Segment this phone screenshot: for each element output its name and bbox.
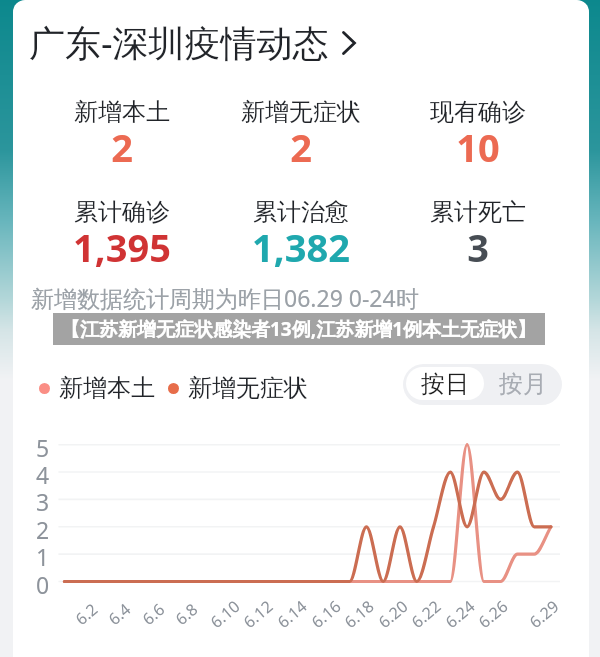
button[interactable]: 新增无症状 — [211, 97, 391, 175]
staticText: 6.2 — [71, 598, 102, 630]
staticText: 广东-深圳疫情动态 — [29, 18, 329, 67]
staticText: 累计死亡 — [388, 197, 568, 227]
staticText: 2 — [211, 121, 391, 173]
staticText: 10 — [388, 121, 568, 173]
button[interactable]: 广东-深圳疫情动态 — [29, 18, 360, 67]
staticText: 6.14 — [273, 595, 311, 633]
staticText: 新增无症状 — [188, 373, 308, 403]
staticText: 3 — [388, 221, 568, 273]
button[interactable]: 新增本土 — [39, 373, 155, 403]
staticText: 6.29 — [525, 595, 563, 633]
staticText: 6.6 — [138, 598, 169, 630]
staticText: 4 — [36, 459, 50, 490]
staticText: 现有确诊 — [388, 97, 568, 127]
staticText: 累计治愈 — [211, 197, 391, 227]
staticText: 新增本土 — [32, 97, 212, 127]
button[interactable]: 累计死亡 — [388, 197, 568, 275]
staticText: 6.18 — [340, 595, 378, 633]
staticText: 2 — [36, 514, 50, 545]
staticText: 6.4 — [104, 598, 135, 630]
staticText: 1,395 — [32, 221, 212, 273]
staticText: 新增无症状 — [211, 97, 391, 127]
staticText: 6.12 — [239, 595, 277, 633]
button[interactable]: 按月 — [484, 367, 562, 400]
staticText: 5 — [36, 432, 50, 463]
other: More — [338, 26, 360, 60]
staticText: 1 — [36, 541, 50, 572]
staticText: 【江苏新增无症状感染者13例,江苏新增1例本土无症状】 — [61, 316, 537, 342]
button[interactable]: 累计治愈 — [211, 197, 391, 275]
staticText: 6.8 — [171, 598, 202, 630]
staticText: 1,382 — [211, 221, 391, 273]
button[interactable]: 新增无症状 — [168, 373, 308, 403]
button[interactable]: 新增本土 — [32, 97, 212, 175]
staticText: 6.10 — [206, 595, 244, 633]
staticText: 6.20 — [374, 595, 412, 633]
button[interactable]: 累计确诊 — [32, 197, 212, 275]
staticText: 6.22 — [407, 595, 445, 633]
staticText: 0 — [36, 569, 50, 600]
staticText: 按日 — [421, 369, 469, 399]
staticText: 3 — [36, 486, 50, 517]
staticText: 新增本土 — [59, 373, 155, 403]
staticText: 累计确诊 — [32, 197, 212, 227]
button[interactable]: 按日 — [406, 367, 484, 400]
button[interactable]: 现有确诊 — [388, 97, 568, 175]
staticText: 6.16 — [307, 595, 345, 633]
staticText: 6.24 — [441, 595, 479, 633]
staticText: 按月 — [499, 369, 547, 399]
staticText: 6.26 — [474, 595, 512, 633]
staticText: 2 — [32, 121, 212, 173]
staticText: 新增数据统计周期为昨日06.29 0-24时 — [31, 282, 419, 313]
